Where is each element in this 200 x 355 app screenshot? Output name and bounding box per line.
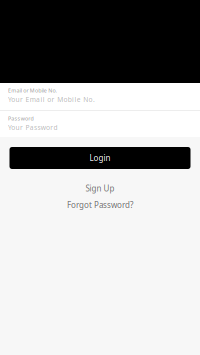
staticText: Sign Up	[85, 183, 114, 194]
button[interactable]: Password	[0, 111, 200, 137]
button[interactable]: Forgot Password?	[0, 200, 200, 210]
staticText: Forgot Password?	[67, 200, 133, 210]
button[interactable]: Sign Up	[0, 183, 200, 194]
staticText: Your Password	[8, 123, 58, 132]
button[interactable]: Email or Mobile No.	[0, 83, 200, 110]
staticText: Login	[89, 153, 110, 163]
staticText: Your Email or Mobile No.	[8, 95, 95, 104]
staticText: Password	[8, 115, 33, 122]
staticText: Email or Mobile No.	[8, 87, 57, 94]
button[interactable]: Login	[9, 147, 190, 169]
